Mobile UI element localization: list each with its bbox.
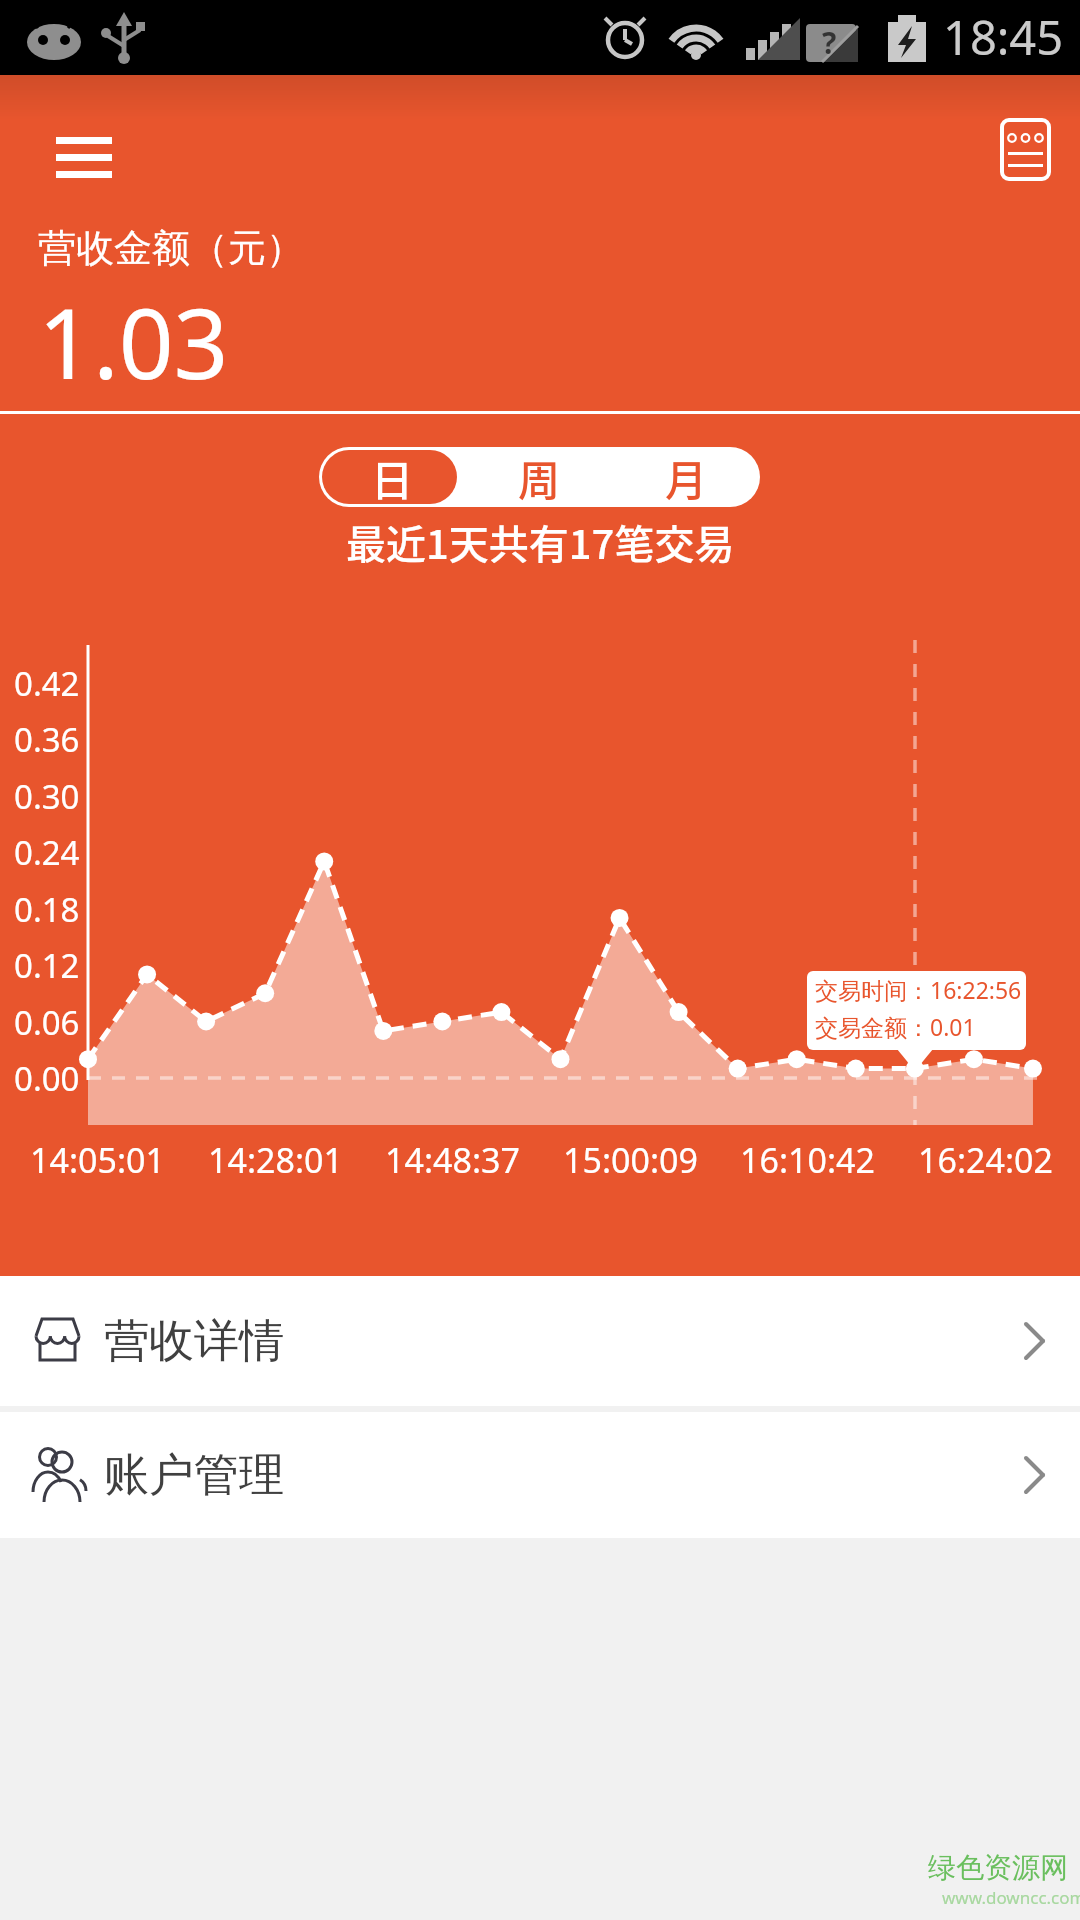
staticText: 14:28:01	[208, 1137, 343, 1183]
staticText: 16:10:42	[740, 1137, 875, 1183]
staticText: 营收金额（元）	[38, 224, 304, 272]
staticText: 绿色资源网	[928, 1850, 1068, 1885]
staticText: 月	[665, 447, 708, 507]
staticText: 0.12	[14, 943, 80, 988]
staticText: 0.24	[14, 830, 80, 875]
staticText: 0.06	[14, 1000, 80, 1045]
staticText: 0.36	[14, 717, 80, 762]
staticText: 0.00	[14, 1056, 80, 1101]
staticText: 0.42	[14, 661, 80, 706]
staticText: 0.18	[14, 887, 80, 932]
staticText: 14:48:37	[385, 1137, 520, 1183]
staticText: 周	[518, 447, 561, 507]
staticText: 15:00:09	[563, 1137, 698, 1183]
staticText: 0.30	[14, 774, 80, 819]
staticText: 交易金额：0.01	[815, 1011, 976, 1042]
staticText: www.downcc.com	[942, 1886, 1080, 1909]
staticText: 14:05:01	[30, 1137, 165, 1183]
staticText: 交易时间：16:22:56	[815, 974, 1022, 1005]
staticText: 日	[371, 447, 414, 507]
staticText: 账户管理	[104, 1447, 284, 1504]
staticText: 营收详情	[104, 1313, 284, 1370]
staticText: 1.03	[38, 276, 229, 407]
staticText: ?	[822, 22, 837, 63]
staticText: 16:24:02	[918, 1137, 1053, 1183]
staticText: 18:45	[943, 5, 1064, 69]
staticText: 最近1天共有17笔交易	[346, 513, 735, 571]
